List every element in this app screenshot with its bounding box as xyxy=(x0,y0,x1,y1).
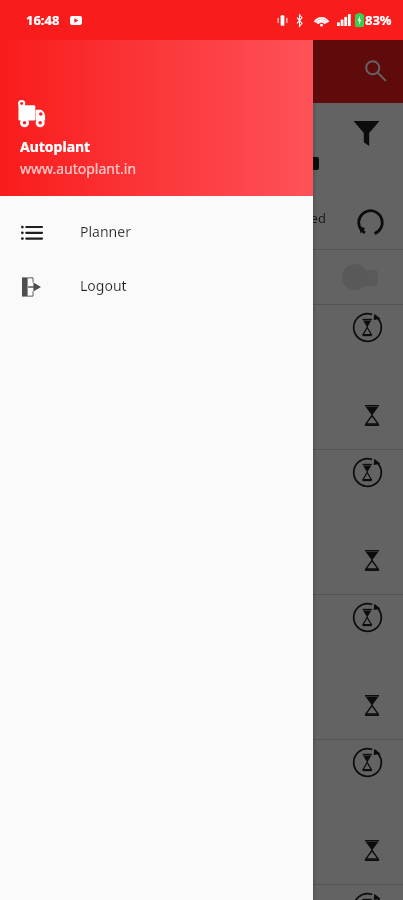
button[interactable]: Close navigation drawer xyxy=(0,0,403,900)
staticText: Completed xyxy=(259,209,326,227)
staticText: Logout xyxy=(80,276,127,295)
staticText: www.autoplant.in xyxy=(20,159,137,178)
staticText: 83% xyxy=(365,11,392,29)
staticText: 16:48 xyxy=(26,11,60,29)
button[interactable]: Search xyxy=(364,59,387,82)
button[interactable]: Refresh xyxy=(356,208,385,237)
button[interactable]: Filter xyxy=(353,120,380,146)
staticText: Autoplant xyxy=(20,137,91,156)
staticText: Planner xyxy=(80,222,131,241)
button[interactable]: Logout xyxy=(0,260,313,314)
button[interactable]: Planner xyxy=(0,206,313,260)
